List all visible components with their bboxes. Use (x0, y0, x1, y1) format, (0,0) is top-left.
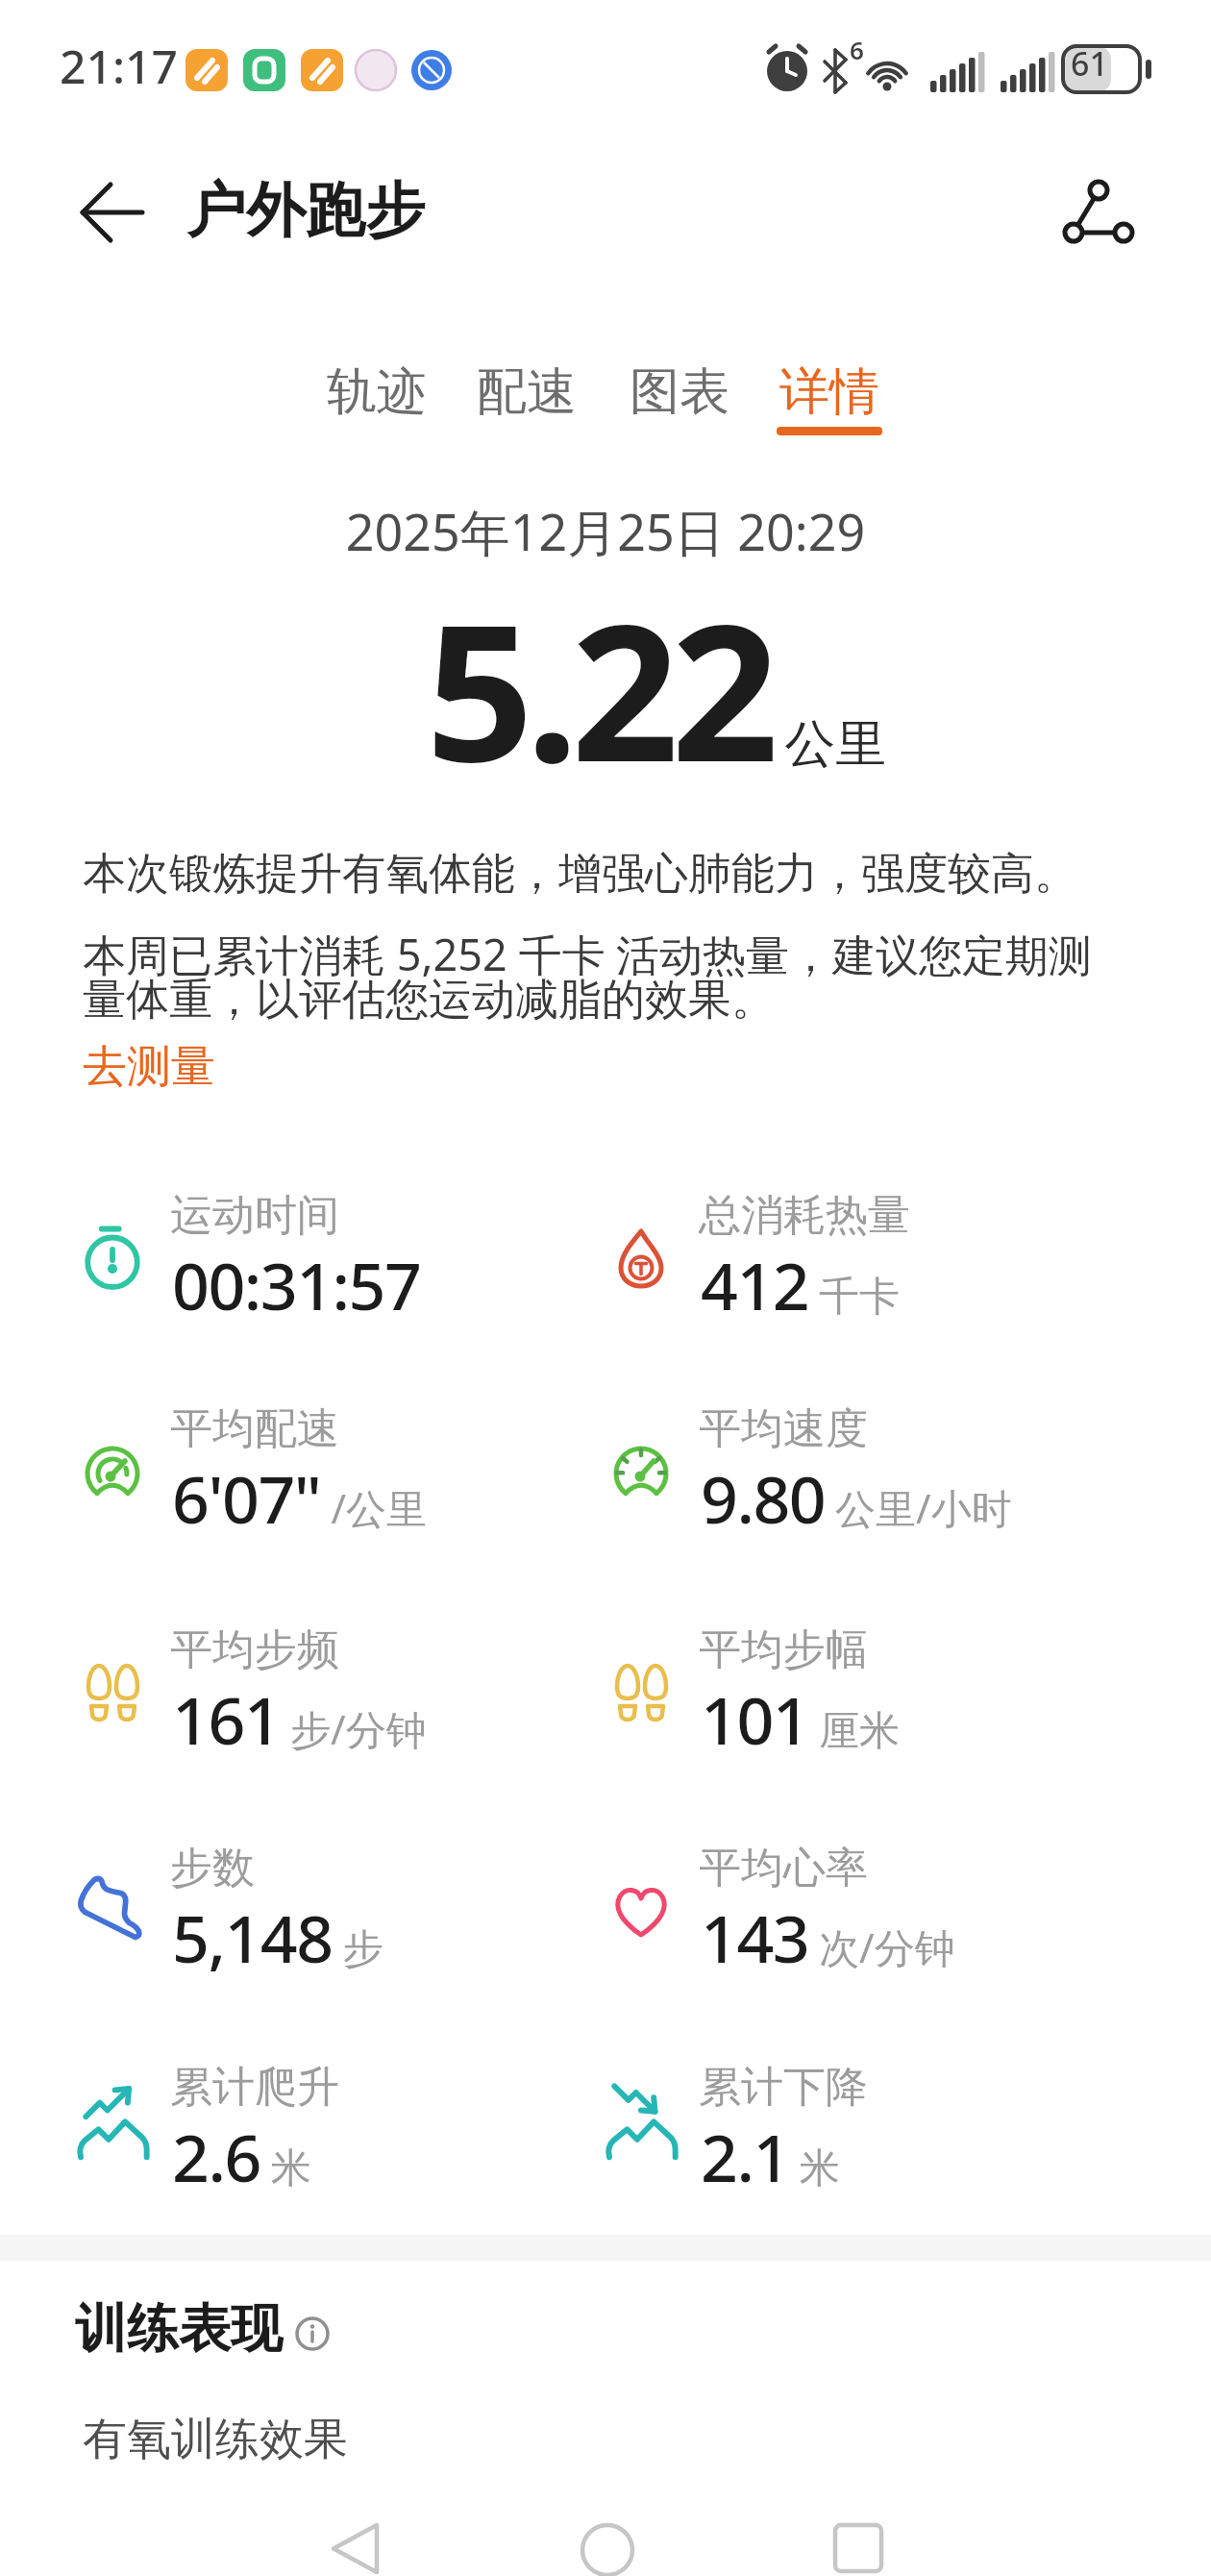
staticText: 6 (850, 33, 864, 66)
staticText: 2025年12月25日 20:29 (0, 497, 1211, 565)
button[interactable]: 配速 (452, 354, 602, 431)
staticText: 101 厘米 (701, 1674, 901, 1764)
staticText: 143 次/分钟 (701, 1893, 955, 1982)
staticText: 5,148 步 (172, 1893, 383, 1982)
button[interactable] (1048, 168, 1144, 255)
staticText: 去测量 (83, 1039, 215, 1095)
button[interactable] (810, 2503, 906, 2576)
staticText: 总消耗热量 (699, 1189, 910, 1242)
button[interactable]: 轨迹 (302, 354, 452, 431)
button[interactable]: 图表 (605, 354, 754, 431)
staticText: 平均步频 (170, 1623, 339, 1676)
staticText: 00:31:57 (172, 1240, 421, 1329)
button[interactable]: 详情 (754, 354, 904, 431)
button[interactable] (559, 2503, 655, 2576)
staticText: 配速 (477, 360, 577, 424)
staticText: 21:17 (60, 35, 178, 97)
staticText: 运动时间 (170, 1189, 339, 1242)
staticText: 户外跑步 (186, 173, 425, 248)
staticText: 累计下降 (699, 2061, 868, 2114)
button[interactable] (294, 2316, 331, 2352)
staticText: 5.22 公里 (426, 559, 887, 816)
staticText: 详情 (779, 360, 879, 424)
staticText: 61 (1071, 41, 1108, 86)
staticText: 平均心率 (699, 1842, 868, 1895)
button[interactable] (67, 178, 159, 255)
staticText: 量体重，以评估您运动减脂的效果。 (83, 973, 775, 1028)
staticText: 平均步幅 (699, 1623, 868, 1676)
button[interactable]: 去测量 (83, 1039, 215, 1095)
staticText: 2.6 米 (172, 2112, 311, 2201)
button[interactable] (309, 2503, 406, 2576)
staticText: 412 千卡 (701, 1240, 901, 1329)
staticText: 累计爬升 (170, 2061, 339, 2114)
staticText: 有氧训练效果 (83, 2412, 348, 2467)
staticText: 本次锻炼提升有氧体能，增强心肺能力，强度较高。 (83, 847, 1077, 902)
staticText: 步数 (170, 1842, 255, 1895)
staticText: 9.80 公里/小时 (701, 1453, 1012, 1543)
staticText: 2.1 米 (701, 2112, 840, 2201)
staticText: 图表 (630, 360, 729, 424)
staticText: 训练表现 (75, 2296, 283, 2362)
staticText: 本周已累计消耗 5,252 千卡 活动热量，建议您定期测 (83, 925, 1093, 983)
staticText: 6'07" /公里 (172, 1453, 428, 1543)
staticText: 轨迹 (327, 360, 427, 424)
staticText: 161 步/分钟 (172, 1674, 427, 1764)
staticText: 平均速度 (699, 1402, 868, 1455)
staticText: 平均配速 (170, 1402, 339, 1455)
